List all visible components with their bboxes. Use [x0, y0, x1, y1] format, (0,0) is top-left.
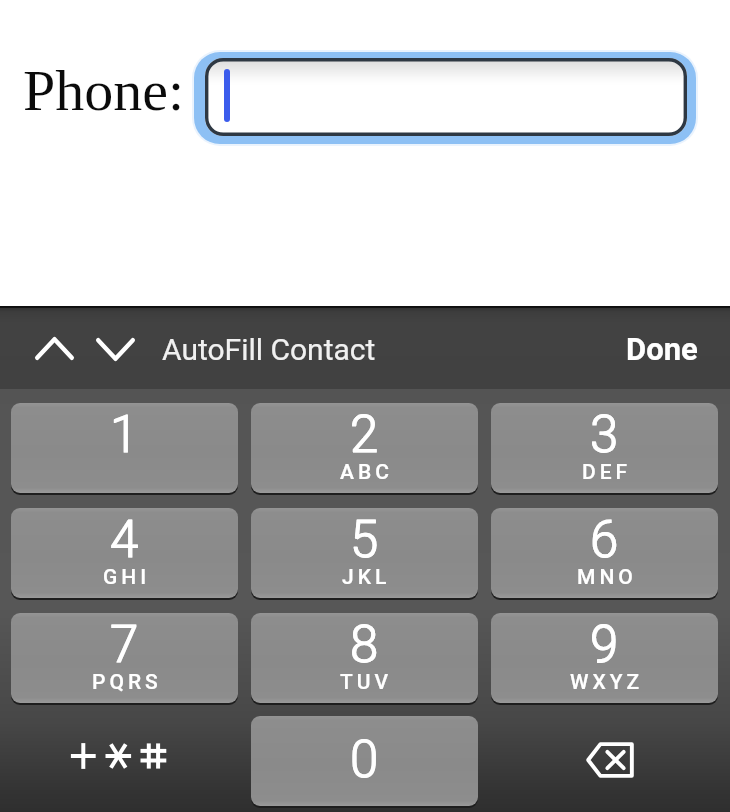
- button[interactable]: [190, 46, 700, 150]
- staticText: 8: [350, 615, 379, 675]
- button[interactable]: 8: [251, 613, 478, 703]
- staticText: DEF: [582, 460, 632, 485]
- button[interactable]: 5: [251, 508, 478, 598]
- staticText: Phone:: [23, 58, 185, 122]
- button[interactable]: 3: [491, 403, 718, 493]
- staticText: 1: [110, 405, 139, 465]
- staticText: AutoFill Contact: [162, 332, 376, 367]
- button[interactable]: 9: [491, 613, 718, 703]
- staticText: 8: [350, 615, 379, 675]
- staticText: 6: [590, 510, 619, 570]
- staticText: 1: [110, 405, 139, 465]
- button[interactable]: Backspace: [491, 716, 718, 808]
- button[interactable]: 0: [251, 716, 478, 806]
- staticText: GHI: [103, 565, 151, 590]
- button[interactable]: 2: [251, 403, 478, 493]
- staticText: 5: [350, 510, 379, 570]
- staticText: 4: [110, 510, 139, 570]
- staticText: PQRS: [92, 670, 162, 695]
- staticText: 0: [350, 730, 379, 790]
- staticText: 3: [590, 405, 619, 465]
- staticText: 2: [350, 405, 379, 465]
- button[interactable]: Previous field: [24, 322, 84, 374]
- staticText: 5: [350, 510, 379, 570]
- staticText: JKL: [342, 565, 391, 590]
- button[interactable]: Done: [615, 324, 709, 374]
- button[interactable]: 6: [491, 508, 718, 598]
- staticText: 2: [350, 405, 379, 465]
- button[interactable]: 4: [11, 508, 238, 598]
- staticText: WXYZ: [570, 670, 644, 695]
- button[interactable]: Symbols plus star hash: [11, 716, 238, 808]
- button[interactable]: Next field: [85, 323, 145, 375]
- staticText: 3: [590, 405, 619, 465]
- staticText: MNO: [577, 565, 637, 590]
- button[interactable]: 1: [11, 403, 238, 493]
- staticText: Done: [626, 331, 698, 367]
- button[interactable]: 7: [11, 613, 238, 703]
- staticText: 9: [590, 615, 619, 675]
- staticText: 0: [350, 730, 379, 790]
- staticText: ABC: [340, 460, 393, 485]
- staticText: 6: [590, 510, 619, 570]
- staticText: TUV: [340, 670, 393, 695]
- staticText: 4: [110, 510, 139, 570]
- staticText: 7: [110, 615, 139, 675]
- staticText: 9: [590, 615, 619, 675]
- staticText: 7: [110, 615, 139, 675]
